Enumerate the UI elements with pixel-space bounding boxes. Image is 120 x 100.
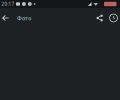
- button[interactable]: Share: [92, 8, 107, 28]
- staticText: Фото: [17, 14, 31, 22]
- staticText: 20:17: [1, 1, 14, 7]
- button[interactable]: History: [107, 8, 120, 28]
- button[interactable]: Back: [0, 8, 10, 28]
